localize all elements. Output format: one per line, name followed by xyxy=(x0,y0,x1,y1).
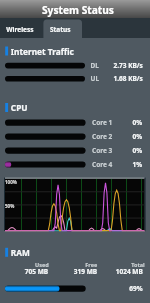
button[interactable]: Status tab xyxy=(43,18,82,38)
button[interactable]: Wireless tab xyxy=(0,18,43,38)
